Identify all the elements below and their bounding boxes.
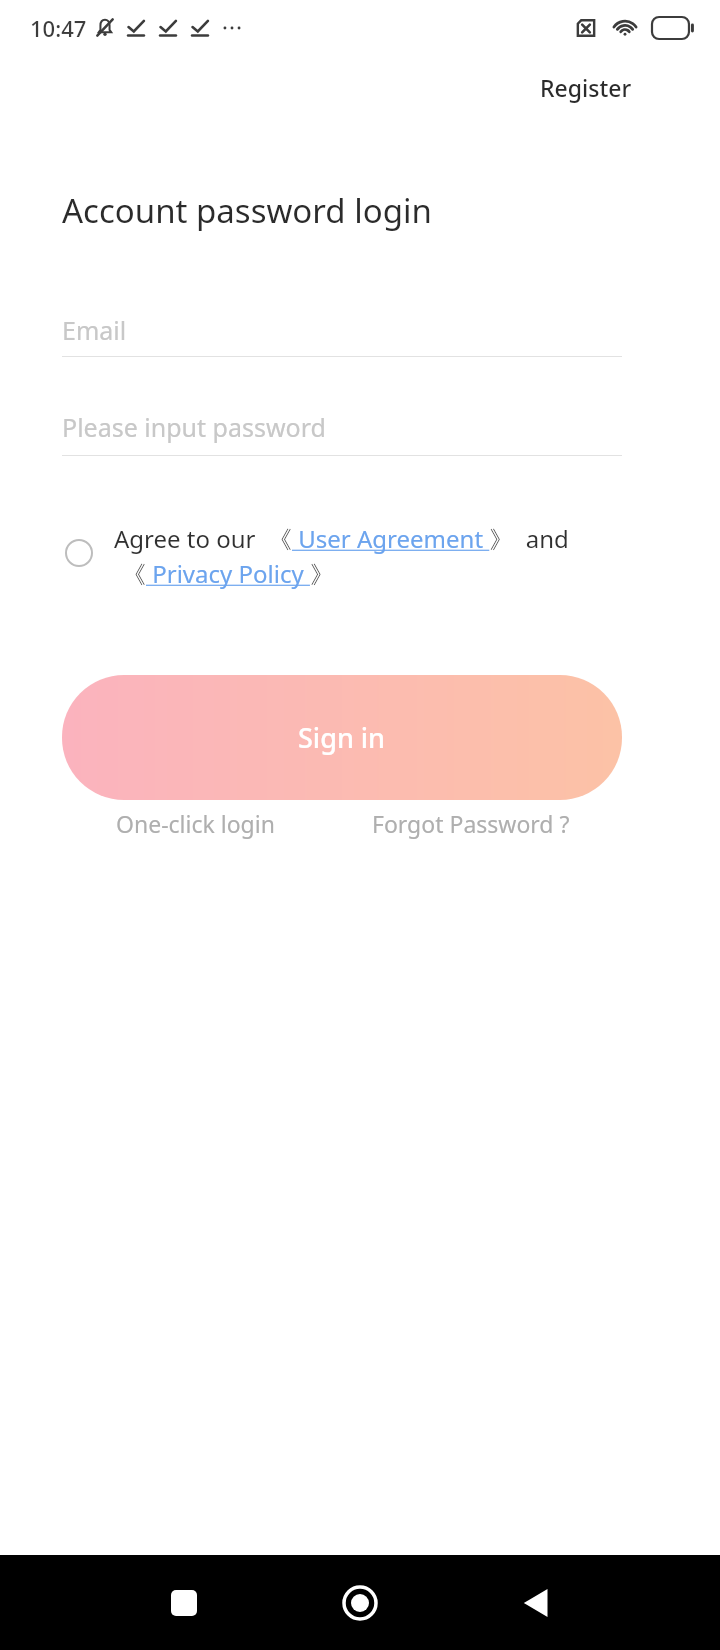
staticText: Account password login [62, 188, 432, 233]
staticText: Please input password [62, 410, 326, 444]
staticText: One-click login [116, 808, 275, 839]
staticText: 《 Privacy Policy 》 [122, 557, 334, 590]
staticText: 10:47 [30, 13, 87, 43]
button[interactable]: Back [504, 1571, 568, 1635]
button[interactable]: 《 Privacy Policy 》 [122, 557, 334, 590]
button[interactable]: Recent apps [152, 1571, 216, 1635]
button[interactable]: Agree to terms checkbox [56, 530, 102, 576]
staticText: Register [540, 72, 632, 103]
button[interactable]: Register [520, 64, 652, 111]
staticText: Agree to our 《 User Agreement 》 and [114, 522, 569, 555]
staticText: Forgot Password ? [372, 808, 570, 839]
staticText: Email [62, 313, 127, 347]
button[interactable]: Home [328, 1571, 392, 1635]
button[interactable]: Sign in [62, 675, 622, 800]
button[interactable]: Email [62, 304, 622, 356]
button[interactable]: One-click login [96, 796, 295, 851]
staticText: Sign in [298, 719, 386, 756]
button[interactable]: Please input password [62, 401, 622, 453]
button[interactable]: Forgot Password ? [352, 796, 590, 851]
